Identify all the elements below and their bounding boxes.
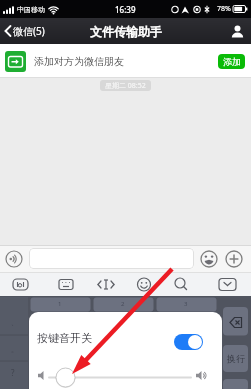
button[interactable] [167, 272, 209, 296]
button[interactable]: 添加 [218, 54, 245, 69]
button[interactable] [83, 272, 125, 296]
button[interactable] [225, 250, 243, 268]
button[interactable]: 微信(5) [4, 24, 45, 38]
staticText: 微信(5) [13, 24, 45, 38]
button[interactable] [29, 248, 194, 269]
staticText: 1 [58, 300, 62, 308]
staticText: 78% [217, 4, 231, 14]
button[interactable] [209, 272, 251, 296]
staticText: ? [11, 367, 15, 378]
button[interactable] [55, 367, 75, 387]
staticText: 换行 [227, 353, 245, 364]
staticText: 添加对方为微信朋友 [34, 55, 124, 68]
staticText: 星期二 08:52 [105, 81, 146, 91]
button[interactable] [0, 272, 41, 296]
button[interactable] [41, 272, 83, 296]
staticText: 3 [184, 300, 188, 308]
button[interactable]: 换行 [223, 345, 248, 372]
staticText: 添加 [223, 56, 241, 67]
button[interactable] [174, 334, 203, 350]
button[interactable] [230, 24, 244, 38]
staticText: 文件传输助手 [90, 24, 162, 39]
staticText: 中国移动 [17, 5, 45, 14]
staticText: 2 [121, 300, 125, 308]
button[interactable] [200, 250, 218, 268]
button[interactable] [5, 250, 23, 268]
button[interactable]: 添加对方为微信朋友 [0, 44, 251, 78]
staticText: 按键音开关 [37, 331, 92, 345]
button[interactable] [125, 272, 167, 296]
button[interactable] [223, 307, 248, 336]
staticText: 16:39 [115, 4, 136, 15]
